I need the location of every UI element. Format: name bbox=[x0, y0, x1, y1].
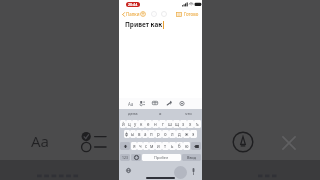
button[interactable]: ч bbox=[137, 142, 143, 150]
staticText: ю bbox=[185, 143, 189, 149]
staticText: г bbox=[162, 121, 164, 127]
button[interactable]: ь bbox=[169, 142, 176, 150]
button[interactable]: ю bbox=[183, 142, 190, 150]
staticText: Aa bbox=[128, 101, 134, 107]
staticText: и bbox=[157, 143, 160, 149]
button[interactable]: й bbox=[120, 120, 126, 128]
staticText: Привет как bbox=[125, 20, 163, 29]
button[interactable]: и bbox=[155, 142, 162, 150]
button[interactable]: б bbox=[176, 142, 183, 150]
button[interactable]: Close bbox=[282, 136, 296, 150]
button[interactable]: о bbox=[162, 130, 169, 138]
staticText: ф bbox=[125, 131, 129, 137]
button[interactable]: 123 bbox=[120, 154, 130, 161]
button[interactable]: Готово bbox=[184, 11, 199, 17]
staticText: н bbox=[154, 121, 157, 127]
button[interactable]: э bbox=[190, 130, 197, 138]
button[interactable]: л bbox=[169, 130, 176, 138]
staticText: к bbox=[140, 121, 143, 127]
button[interactable]: дела bbox=[119, 109, 146, 119]
button[interactable]: ы bbox=[130, 130, 136, 138]
staticText: Ввод bbox=[187, 155, 197, 160]
button[interactable]: щ bbox=[173, 120, 180, 128]
staticText: ь bbox=[171, 143, 174, 149]
button[interactable]: г bbox=[159, 120, 166, 128]
staticText: й bbox=[122, 121, 125, 127]
staticText: д bbox=[178, 131, 181, 137]
staticText: п bbox=[150, 131, 153, 137]
button[interactable]: Hide keyboard bbox=[176, 12, 182, 17]
staticText: ш bbox=[168, 121, 172, 127]
staticText: е bbox=[147, 121, 150, 127]
button[interactable]: з bbox=[180, 120, 187, 128]
button[interactable]: Share bbox=[140, 11, 146, 17]
button[interactable]: ц bbox=[126, 120, 132, 128]
button[interactable]: м bbox=[149, 142, 155, 150]
button[interactable]: Checklist bbox=[140, 101, 145, 105]
button[interactable]: ш bbox=[166, 120, 173, 128]
staticText: ъ bbox=[196, 121, 199, 127]
button[interactable]: Ввод bbox=[182, 154, 201, 161]
button[interactable]: Markup bbox=[232, 131, 254, 153]
button[interactable]: с bbox=[143, 142, 149, 150]
button[interactable]: Dictate bbox=[192, 168, 195, 175]
button[interactable]: Пробел bbox=[142, 154, 181, 161]
button[interactable]: п bbox=[148, 130, 155, 138]
staticText: р bbox=[157, 131, 160, 137]
button[interactable]: а bbox=[142, 130, 148, 138]
staticText: я bbox=[133, 143, 136, 149]
staticText: х bbox=[189, 121, 192, 127]
staticText: у bbox=[134, 121, 137, 127]
staticText: б bbox=[178, 143, 181, 149]
button[interactable]: р bbox=[155, 130, 162, 138]
button[interactable]: Checklist bbox=[81, 132, 106, 151]
button[interactable]: Aa bbox=[128, 101, 134, 107]
button[interactable]: ф bbox=[124, 130, 130, 138]
staticText: я bbox=[159, 111, 162, 117]
staticText: что bbox=[185, 111, 192, 117]
button[interactable]: Папки bbox=[122, 11, 140, 17]
button[interactable]: я bbox=[146, 109, 174, 119]
staticText: Aa bbox=[31, 131, 50, 151]
button[interactable]: Emoji bbox=[131, 154, 141, 161]
staticText: 123 bbox=[122, 155, 128, 160]
staticText: л bbox=[171, 131, 174, 137]
button[interactable]: я bbox=[131, 142, 137, 150]
button[interactable]: у bbox=[132, 120, 138, 128]
staticText: ч bbox=[139, 143, 142, 149]
button[interactable]: к bbox=[138, 120, 145, 128]
button[interactable]: Switch keyboard bbox=[126, 168, 131, 173]
button[interactable]: Backspace bbox=[191, 142, 201, 150]
button[interactable]: ж bbox=[183, 130, 190, 138]
staticText: Папки bbox=[126, 11, 140, 17]
staticText: Пробел bbox=[154, 155, 169, 160]
staticText: т bbox=[164, 143, 167, 149]
staticText: в bbox=[138, 131, 141, 137]
staticText: ж bbox=[185, 131, 189, 137]
button[interactable]: Delete bbox=[161, 11, 167, 17]
button[interactable]: Attach bbox=[166, 101, 172, 106]
button[interactable]: что bbox=[174, 109, 202, 119]
button[interactable]: е bbox=[145, 120, 152, 128]
button[interactable]: Aa bbox=[30, 130, 50, 152]
staticText: щ bbox=[175, 121, 179, 127]
staticText: 20:44 bbox=[128, 2, 138, 7]
staticText: с bbox=[145, 143, 148, 149]
button[interactable]: т bbox=[162, 142, 169, 150]
button[interactable]: ъ bbox=[194, 120, 201, 128]
button[interactable]: н bbox=[152, 120, 159, 128]
staticText: з bbox=[182, 121, 185, 127]
staticText: м bbox=[150, 143, 154, 149]
staticText: Готово bbox=[184, 11, 199, 17]
button[interactable]: в bbox=[136, 130, 142, 138]
button[interactable]: Table bbox=[152, 101, 158, 105]
button[interactable]: More bbox=[151, 11, 157, 17]
staticText: дела bbox=[128, 111, 138, 117]
staticText: э bbox=[192, 131, 195, 137]
button[interactable]: д bbox=[176, 130, 183, 138]
button[interactable]: х bbox=[187, 120, 194, 128]
button[interactable]: Camera bbox=[179, 101, 185, 106]
staticText: ы bbox=[131, 131, 135, 137]
staticText: ц bbox=[128, 121, 131, 127]
button[interactable]: Shift bbox=[120, 142, 130, 150]
